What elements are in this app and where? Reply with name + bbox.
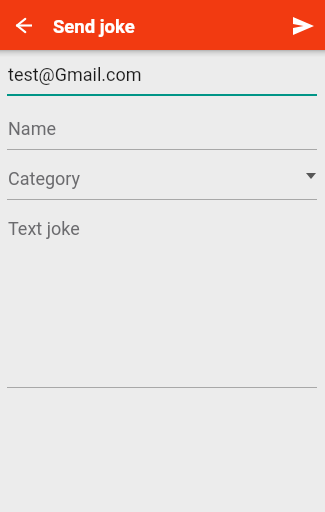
button[interactable]: test@Gmail.com [0,57,325,97]
staticText: Text joke [8,218,80,239]
staticText: Category [8,168,81,189]
staticText: test@Gmail.com [8,64,142,85]
button[interactable]: Text joke [0,211,325,388]
button[interactable]: Category [0,161,325,200]
button[interactable]: Navigate up [10,11,38,39]
staticText: Send joke [53,16,135,38]
staticText: Name [8,118,56,139]
button[interactable]: Send [289,12,317,40]
button[interactable]: Name [0,111,325,151]
